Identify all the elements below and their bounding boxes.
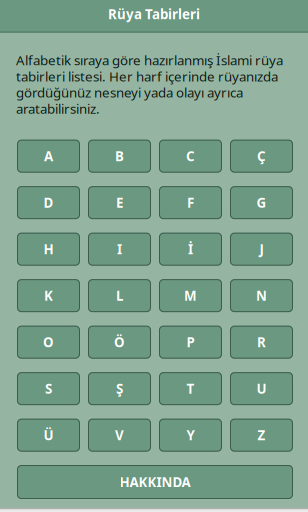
- button[interactable]: J: [230, 233, 293, 266]
- staticText: P: [186, 333, 194, 351]
- staticText: I: [117, 240, 122, 258]
- button[interactable]: D: [17, 186, 80, 219]
- button[interactable]: Ü: [17, 419, 80, 452]
- staticText: L: [116, 287, 123, 305]
- button[interactable]: C: [159, 140, 222, 173]
- staticText: H: [43, 240, 53, 258]
- staticText: V: [115, 426, 124, 444]
- staticText: Ü: [43, 426, 53, 444]
- staticText: F: [187, 194, 194, 212]
- staticText: C: [186, 147, 195, 165]
- button[interactable]: N: [230, 279, 293, 312]
- button[interactable]: E: [88, 186, 151, 219]
- staticText: HAKKINDA: [119, 473, 190, 491]
- staticText: M: [184, 287, 197, 305]
- button[interactable]: K: [17, 279, 80, 312]
- button[interactable]: T: [159, 372, 222, 405]
- staticText: B: [115, 147, 124, 165]
- staticText: Rüya Tabirleri: [108, 5, 200, 23]
- staticText: Alfabetik sıraya göre hazırlanmış İslami…: [16, 52, 283, 117]
- button[interactable]: I: [88, 233, 151, 266]
- staticText: Ş: [116, 380, 123, 398]
- button[interactable]: H: [17, 233, 80, 266]
- staticText: G: [256, 194, 266, 212]
- button[interactable]: Ç: [230, 140, 293, 173]
- button[interactable]: Z: [230, 419, 293, 452]
- staticText: N: [256, 287, 267, 305]
- button[interactable]: S: [17, 372, 80, 405]
- staticText: K: [44, 287, 53, 305]
- button[interactable]: O: [17, 326, 80, 359]
- staticText: U: [256, 380, 266, 398]
- button[interactable]: Ş: [88, 372, 151, 405]
- button[interactable]: R: [230, 326, 293, 359]
- button[interactable]: U: [230, 372, 293, 405]
- button[interactable]: HAKKINDA: [17, 465, 293, 499]
- button[interactable]: L: [88, 279, 151, 312]
- button[interactable]: Y: [159, 419, 222, 452]
- button[interactable]: A: [17, 140, 80, 173]
- staticText: R: [257, 333, 266, 351]
- button[interactable]: G: [230, 186, 293, 219]
- staticText: T: [186, 380, 194, 398]
- staticText: İ: [188, 240, 193, 258]
- staticText: O: [43, 333, 54, 351]
- staticText: Y: [186, 426, 194, 444]
- staticText: A: [44, 147, 53, 165]
- staticText: Ö: [114, 333, 125, 351]
- staticText: S: [45, 380, 52, 398]
- button[interactable]: F: [159, 186, 222, 219]
- button[interactable]: V: [88, 419, 151, 452]
- staticText: J: [259, 240, 263, 258]
- button[interactable]: B: [88, 140, 151, 173]
- staticText: E: [116, 194, 123, 212]
- button[interactable]: Ö: [88, 326, 151, 359]
- staticText: Ç: [257, 147, 266, 165]
- button[interactable]: M: [159, 279, 222, 312]
- staticText: D: [43, 194, 53, 212]
- staticText: Z: [257, 426, 265, 444]
- button[interactable]: P: [159, 326, 222, 359]
- button[interactable]: İ: [159, 233, 222, 266]
